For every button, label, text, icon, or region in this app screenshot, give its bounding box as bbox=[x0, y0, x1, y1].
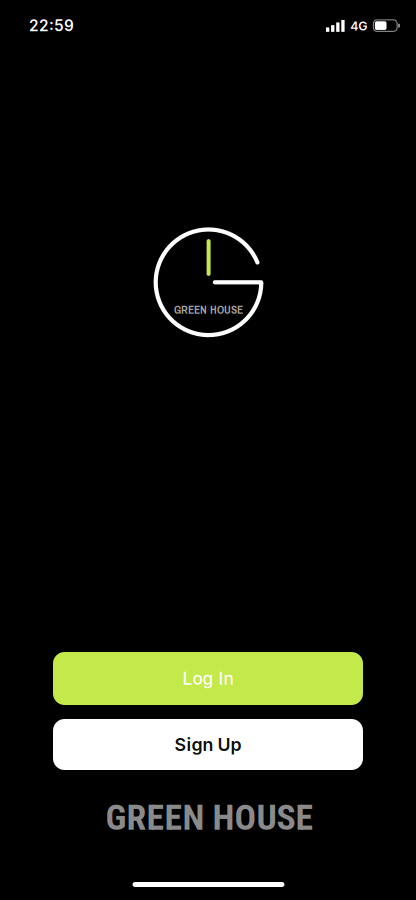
staticText: GREEN HOUSE bbox=[105, 797, 313, 838]
staticText: Sign Up bbox=[174, 734, 241, 755]
button[interactable]: Sign Up bbox=[53, 719, 363, 770]
staticText: Log In bbox=[182, 668, 233, 689]
staticText: 4G bbox=[350, 18, 367, 33]
button[interactable]: Log In bbox=[53, 652, 363, 705]
staticText: 22:59 bbox=[29, 16, 74, 35]
staticText: GREEN HOUSE bbox=[174, 302, 243, 317]
